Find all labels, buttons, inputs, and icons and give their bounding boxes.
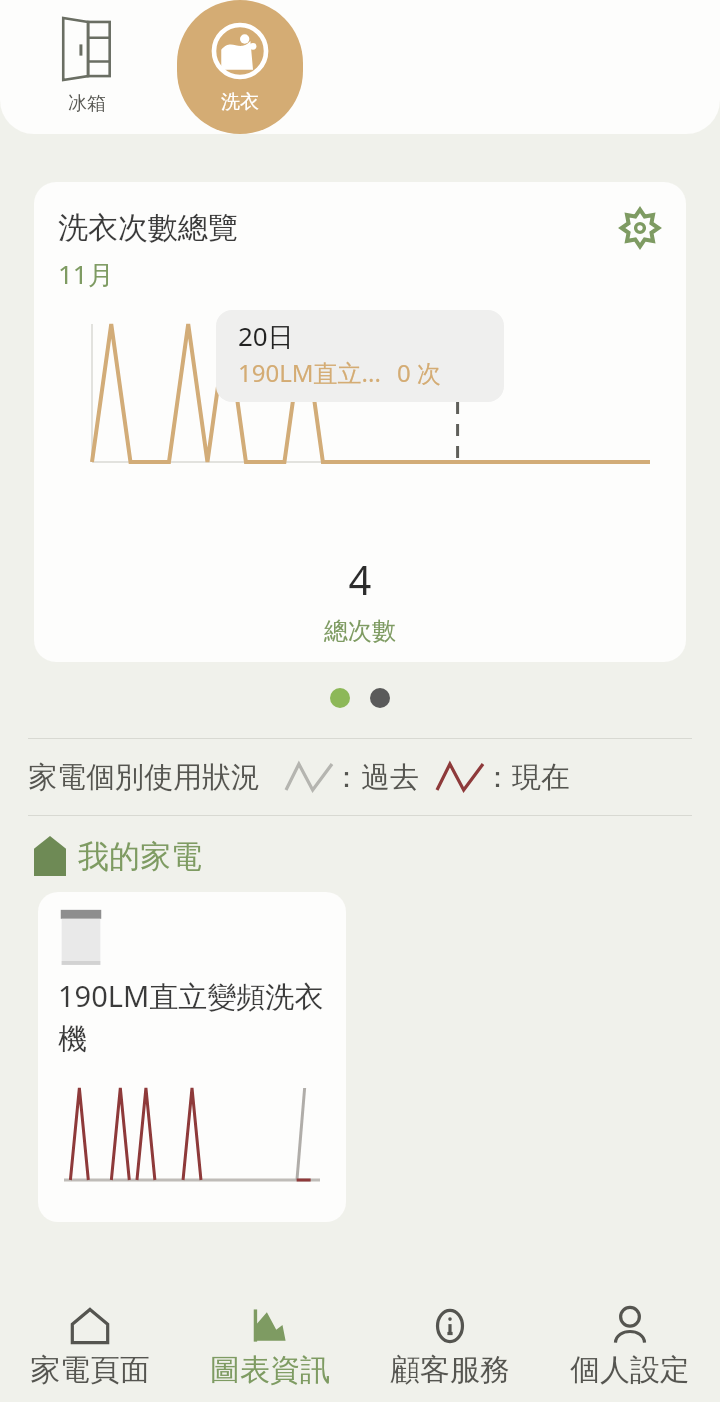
staticText: 我的家電 — [78, 837, 202, 876]
staticText: 4 — [34, 552, 686, 606]
staticText: 家電頁面 — [30, 1351, 150, 1389]
button[interactable]: Page 2 — [370, 688, 390, 708]
button[interactable]: 冰箱 — [28, 0, 146, 134]
staticText: 190LM直立變頻洗衣機 — [58, 976, 330, 1058]
staticText: 20日 — [238, 318, 294, 354]
button[interactable]: 個人設定 — [540, 1290, 720, 1402]
staticText: 洗衣 — [221, 90, 259, 114]
staticText: 洗衣次數總覽 — [58, 209, 238, 247]
button[interactable]: 家電頁面 — [0, 1290, 180, 1402]
button[interactable]: 190LM直立變頻洗衣機 — [38, 892, 346, 1222]
staticText: 冰箱 — [68, 92, 106, 116]
button[interactable]: Page 1 — [330, 688, 350, 708]
staticText: 0 次 — [397, 356, 441, 389]
staticText: 家電個別使用狀況 — [28, 759, 260, 796]
button[interactable]: 洗衣次數總覽 — [34, 182, 686, 662]
staticText: 11月 — [58, 256, 114, 292]
staticText: 圖表資訊 — [210, 1351, 330, 1389]
staticText: 190LM直立... — [238, 356, 381, 389]
button[interactable]: 圖表資訊 — [180, 1290, 360, 1402]
staticText: 總次數 — [34, 616, 686, 646]
staticText: 顧客服務 — [390, 1351, 510, 1389]
button[interactable]: 洗衣 — [174, 0, 306, 134]
staticText: ：過去 — [332, 759, 419, 796]
staticText: 個人設定 — [570, 1351, 690, 1389]
button[interactable]: Settings — [616, 204, 664, 252]
staticText: ：現在 — [483, 759, 570, 796]
button[interactable]: 顧客服務 — [360, 1290, 540, 1402]
